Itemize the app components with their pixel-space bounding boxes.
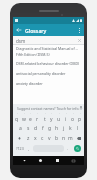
staticText: DSM-related behaviour disorder (DBD) bbox=[16, 61, 80, 66]
button[interactable]: , bbox=[26, 144, 32, 153]
button[interactable]: · bbox=[41, 112, 48, 123]
staticText: e bbox=[29, 116, 32, 123]
button[interactable]: DSM-related behaviour disorder (DBD) bbox=[13, 58, 84, 68]
button[interactable]: · bbox=[62, 112, 69, 123]
button[interactable]: dsm bbox=[13, 36, 84, 45]
button[interactable]: Search bbox=[71, 144, 83, 153]
staticText: v bbox=[48, 135, 51, 142]
staticText: · bbox=[80, 112, 81, 116]
staticText: k bbox=[69, 125, 72, 132]
staticText: antisocial personality disorder bbox=[16, 71, 66, 76]
staticText: w bbox=[22, 116, 26, 123]
staticText: Suggest contact names? Touch for info. bbox=[17, 106, 80, 111]
button[interactable]: g bbox=[46, 123, 53, 133]
staticText: j bbox=[63, 125, 65, 132]
staticText: a bbox=[19, 125, 22, 132]
staticText: n bbox=[62, 135, 66, 142]
button[interactable]: Backspace bbox=[74, 133, 83, 143]
button[interactable]: f bbox=[39, 123, 46, 133]
button[interactable]: . bbox=[65, 144, 71, 153]
button[interactable]: z bbox=[24, 133, 32, 143]
button[interactable]: · bbox=[34, 112, 41, 123]
staticText: b bbox=[55, 135, 59, 142]
button[interactable]: · bbox=[76, 112, 83, 123]
staticText: z bbox=[27, 135, 30, 142]
button[interactable]: Diagnostic and Statistical Manual of Men… bbox=[13, 45, 84, 58]
button[interactable]: · bbox=[55, 112, 62, 123]
button[interactable]: Hide keyboard bbox=[18, 156, 30, 165]
button[interactable]: · bbox=[14, 112, 20, 123]
button[interactable]: j bbox=[60, 123, 67, 133]
button[interactable]: n bbox=[60, 133, 67, 143]
button[interactable]: k bbox=[67, 123, 74, 133]
staticText: i bbox=[65, 116, 67, 123]
staticText: s bbox=[27, 125, 30, 132]
staticText: , bbox=[28, 146, 30, 152]
staticText: · bbox=[66, 112, 67, 116]
button[interactable]: d bbox=[32, 123, 39, 133]
staticText: Fifth Edition (DSM-5) bbox=[16, 52, 50, 57]
button[interactable]: · bbox=[69, 112, 76, 123]
staticText: · bbox=[30, 112, 31, 116]
button[interactable]: · bbox=[20, 112, 27, 123]
staticText: o bbox=[71, 116, 75, 123]
staticText: · bbox=[59, 112, 60, 116]
staticText: · bbox=[45, 112, 46, 116]
staticText: d bbox=[34, 125, 38, 132]
staticText: Diagnostic and Statistical Manual of Men… bbox=[16, 46, 81, 51]
button[interactable]: v bbox=[46, 133, 53, 143]
button[interactable]: Navigate up bbox=[13, 24, 25, 36]
button[interactable]: Voice input bbox=[77, 104, 84, 112]
button[interactable]: Clear query bbox=[75, 36, 84, 45]
staticText: l bbox=[77, 125, 79, 132]
button[interactable]: h bbox=[53, 123, 60, 133]
button[interactable]: More options bbox=[74, 24, 84, 36]
staticText: r bbox=[36, 116, 39, 123]
staticText: q bbox=[15, 116, 19, 123]
button[interactable]: x bbox=[32, 133, 39, 143]
button[interactable]: s bbox=[24, 123, 32, 133]
staticText: Glossary bbox=[25, 27, 74, 34]
button[interactable]: Shift bbox=[14, 133, 24, 143]
staticText: c bbox=[41, 135, 44, 142]
staticText: p bbox=[78, 116, 82, 123]
staticText: · bbox=[73, 112, 74, 116]
staticText: m bbox=[68, 135, 73, 142]
staticText: · bbox=[24, 112, 25, 116]
button[interactable]: c bbox=[39, 133, 46, 143]
button[interactable]: Switch input method bbox=[67, 156, 79, 165]
button[interactable]: anxiety disorder bbox=[13, 78, 84, 88]
staticText: u bbox=[57, 116, 61, 123]
staticText: · bbox=[51, 112, 52, 116]
button[interactable]: · bbox=[48, 112, 55, 123]
staticText: dsm bbox=[16, 38, 26, 44]
staticText: · bbox=[17, 112, 18, 116]
staticText: t bbox=[44, 116, 46, 123]
button[interactable]: b bbox=[53, 133, 60, 143]
staticText: h bbox=[55, 125, 59, 132]
staticText: anxiety disorder bbox=[16, 81, 43, 86]
staticText: . bbox=[67, 146, 69, 152]
button[interactable]: ?123 bbox=[14, 144, 26, 153]
button[interactable]: Suggest contact names? Touch for info. bbox=[13, 104, 84, 112]
staticText: · bbox=[37, 112, 38, 116]
button[interactable]: l bbox=[74, 123, 81, 133]
button[interactable]: Recent apps bbox=[51, 156, 63, 165]
button[interactable]: antisocial personality disorder bbox=[13, 68, 84, 78]
staticText: g bbox=[48, 125, 52, 132]
button[interactable]: m bbox=[67, 133, 74, 143]
button[interactable]: a bbox=[16, 123, 24, 133]
button[interactable]: Home bbox=[34, 156, 46, 165]
staticText: ?123 bbox=[16, 146, 24, 151]
staticText: y bbox=[50, 116, 53, 123]
button[interactable]: · bbox=[27, 112, 34, 123]
staticText: x bbox=[34, 135, 37, 142]
staticText: f bbox=[42, 125, 44, 132]
